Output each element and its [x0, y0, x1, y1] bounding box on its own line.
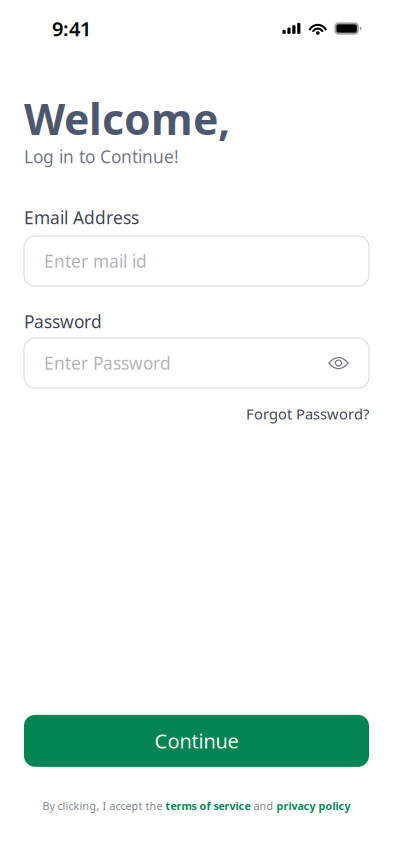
staticText: Enter Password [44, 351, 171, 374]
staticText: Email Address [24, 206, 139, 229]
button[interactable]: Forgot Password? [246, 404, 369, 424]
staticText: Enter mail id [44, 249, 147, 272]
staticText: Forgot Password? [246, 404, 369, 424]
staticText: privacy policy [276, 799, 350, 813]
staticText: and [250, 799, 276, 813]
staticText: 9:41 [52, 15, 91, 42]
staticText: By clicking, I accept the [42, 799, 165, 813]
button[interactable]: Continue [24, 715, 369, 767]
button[interactable]: terms of service [165, 799, 250, 813]
staticText: terms of service [165, 799, 250, 813]
staticText: Welcome, [24, 90, 230, 147]
staticText: Log in to Continue! [24, 145, 179, 168]
staticText: Password [24, 310, 102, 333]
button[interactable]: privacy policy [276, 799, 350, 813]
staticText: Continue [154, 728, 238, 754]
